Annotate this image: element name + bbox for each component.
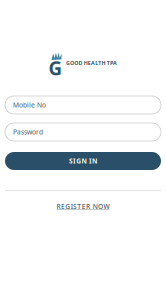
staticText: SIGN IN xyxy=(69,157,97,165)
staticText: REGISTER NOW xyxy=(57,202,109,211)
staticText: Password xyxy=(13,128,43,136)
staticText: Mobile No xyxy=(13,101,46,109)
staticText: G xyxy=(48,56,62,80)
button[interactable]: SIGN IN xyxy=(5,152,161,170)
staticText: GOOD HEALTH TPA xyxy=(66,59,117,67)
button[interactable]: REGISTER NOW xyxy=(53,200,113,213)
button[interactable]: Password xyxy=(5,123,161,141)
button[interactable]: Mobile No xyxy=(5,96,161,114)
